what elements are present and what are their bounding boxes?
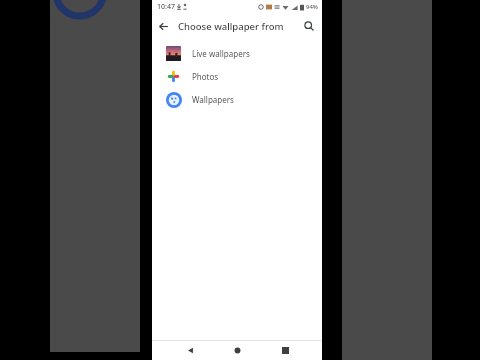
staticText: Choose wallpaper from: [178, 20, 284, 33]
button[interactable]: Home: [227, 340, 247, 360]
button[interactable]: Search: [299, 16, 319, 36]
staticText: Photos: [192, 71, 219, 82]
button[interactable]: Back: [180, 340, 200, 360]
button[interactable]: Wallpapers: [152, 88, 322, 111]
button[interactable]: Back: [152, 15, 174, 37]
staticText: 10:47: [157, 2, 175, 12]
staticText: Wallpapers: [192, 94, 234, 105]
button[interactable]: Photos: [152, 65, 322, 88]
button[interactable]: Recents: [275, 340, 295, 360]
staticText: Live wallpapers: [192, 48, 250, 59]
staticText: 94%: [306, 3, 318, 11]
button[interactable]: Live wallpapers: [152, 42, 322, 65]
